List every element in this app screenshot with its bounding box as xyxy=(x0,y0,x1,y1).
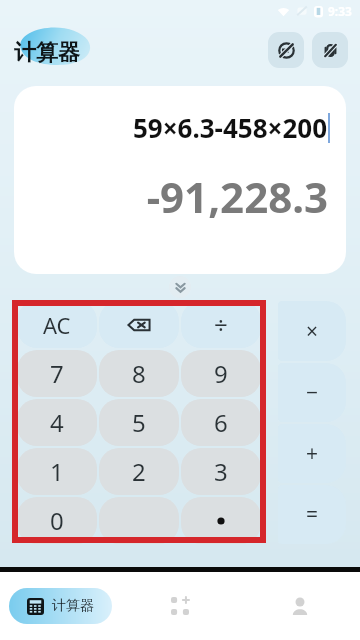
staticText: 0 xyxy=(50,504,64,537)
button[interactable] xyxy=(181,497,261,544)
button[interactable]: 7 xyxy=(17,350,97,397)
button[interactable]: 计算器 xyxy=(9,588,112,624)
button[interactable]: × xyxy=(278,301,346,361)
staticText: 3 xyxy=(214,455,228,488)
button[interactable]: 59×6.3-458×200 xyxy=(14,86,346,274)
staticText: 4 xyxy=(50,406,64,439)
staticText: 8 xyxy=(132,357,146,390)
button[interactable]: 0 xyxy=(17,497,97,544)
staticText: × xyxy=(306,317,319,346)
button[interactable]: 9 xyxy=(181,350,261,397)
staticText: − xyxy=(306,378,319,407)
staticText: 2 xyxy=(132,455,146,488)
staticText: = xyxy=(306,500,319,529)
staticText: 5 xyxy=(132,406,146,439)
staticText: -91,228.3 xyxy=(146,168,328,225)
button[interactable]: 6 xyxy=(181,399,261,446)
button[interactable]: 4 xyxy=(17,399,97,446)
button[interactable]: − xyxy=(278,363,346,422)
button[interactable]: ÷ xyxy=(181,301,261,348)
button[interactable]: 5 xyxy=(99,399,179,446)
button[interactable]: Mute sound xyxy=(268,32,304,68)
button[interactable]: Profile xyxy=(240,572,360,640)
button[interactable]: 8 xyxy=(99,350,179,397)
button[interactable]: Converter xyxy=(120,572,240,640)
staticText: 59×6.3-458×200 xyxy=(132,110,327,145)
staticText: ÷ xyxy=(214,308,228,341)
staticText: 9 xyxy=(214,357,228,390)
staticText: AC xyxy=(43,310,71,340)
button[interactable]: = xyxy=(278,485,346,544)
staticText: 1 xyxy=(50,455,64,488)
button[interactable]: Expand history xyxy=(169,276,191,298)
button[interactable]: 3 xyxy=(181,448,261,495)
staticText: + xyxy=(306,439,319,468)
staticText: 6 xyxy=(214,406,228,439)
staticText: 7 xyxy=(50,357,64,390)
button[interactable]: 2 xyxy=(99,448,179,495)
button[interactable]: Vibration off xyxy=(312,32,348,68)
button[interactable] xyxy=(99,497,179,544)
staticText: 9:33 xyxy=(328,3,352,19)
staticText: 计算器 xyxy=(52,597,94,615)
button[interactable]: 1 xyxy=(17,448,97,495)
button[interactable]: + xyxy=(278,424,346,483)
button[interactable] xyxy=(99,301,179,348)
staticText: 计算器 xyxy=(14,39,80,67)
button[interactable]: AC xyxy=(17,301,97,348)
